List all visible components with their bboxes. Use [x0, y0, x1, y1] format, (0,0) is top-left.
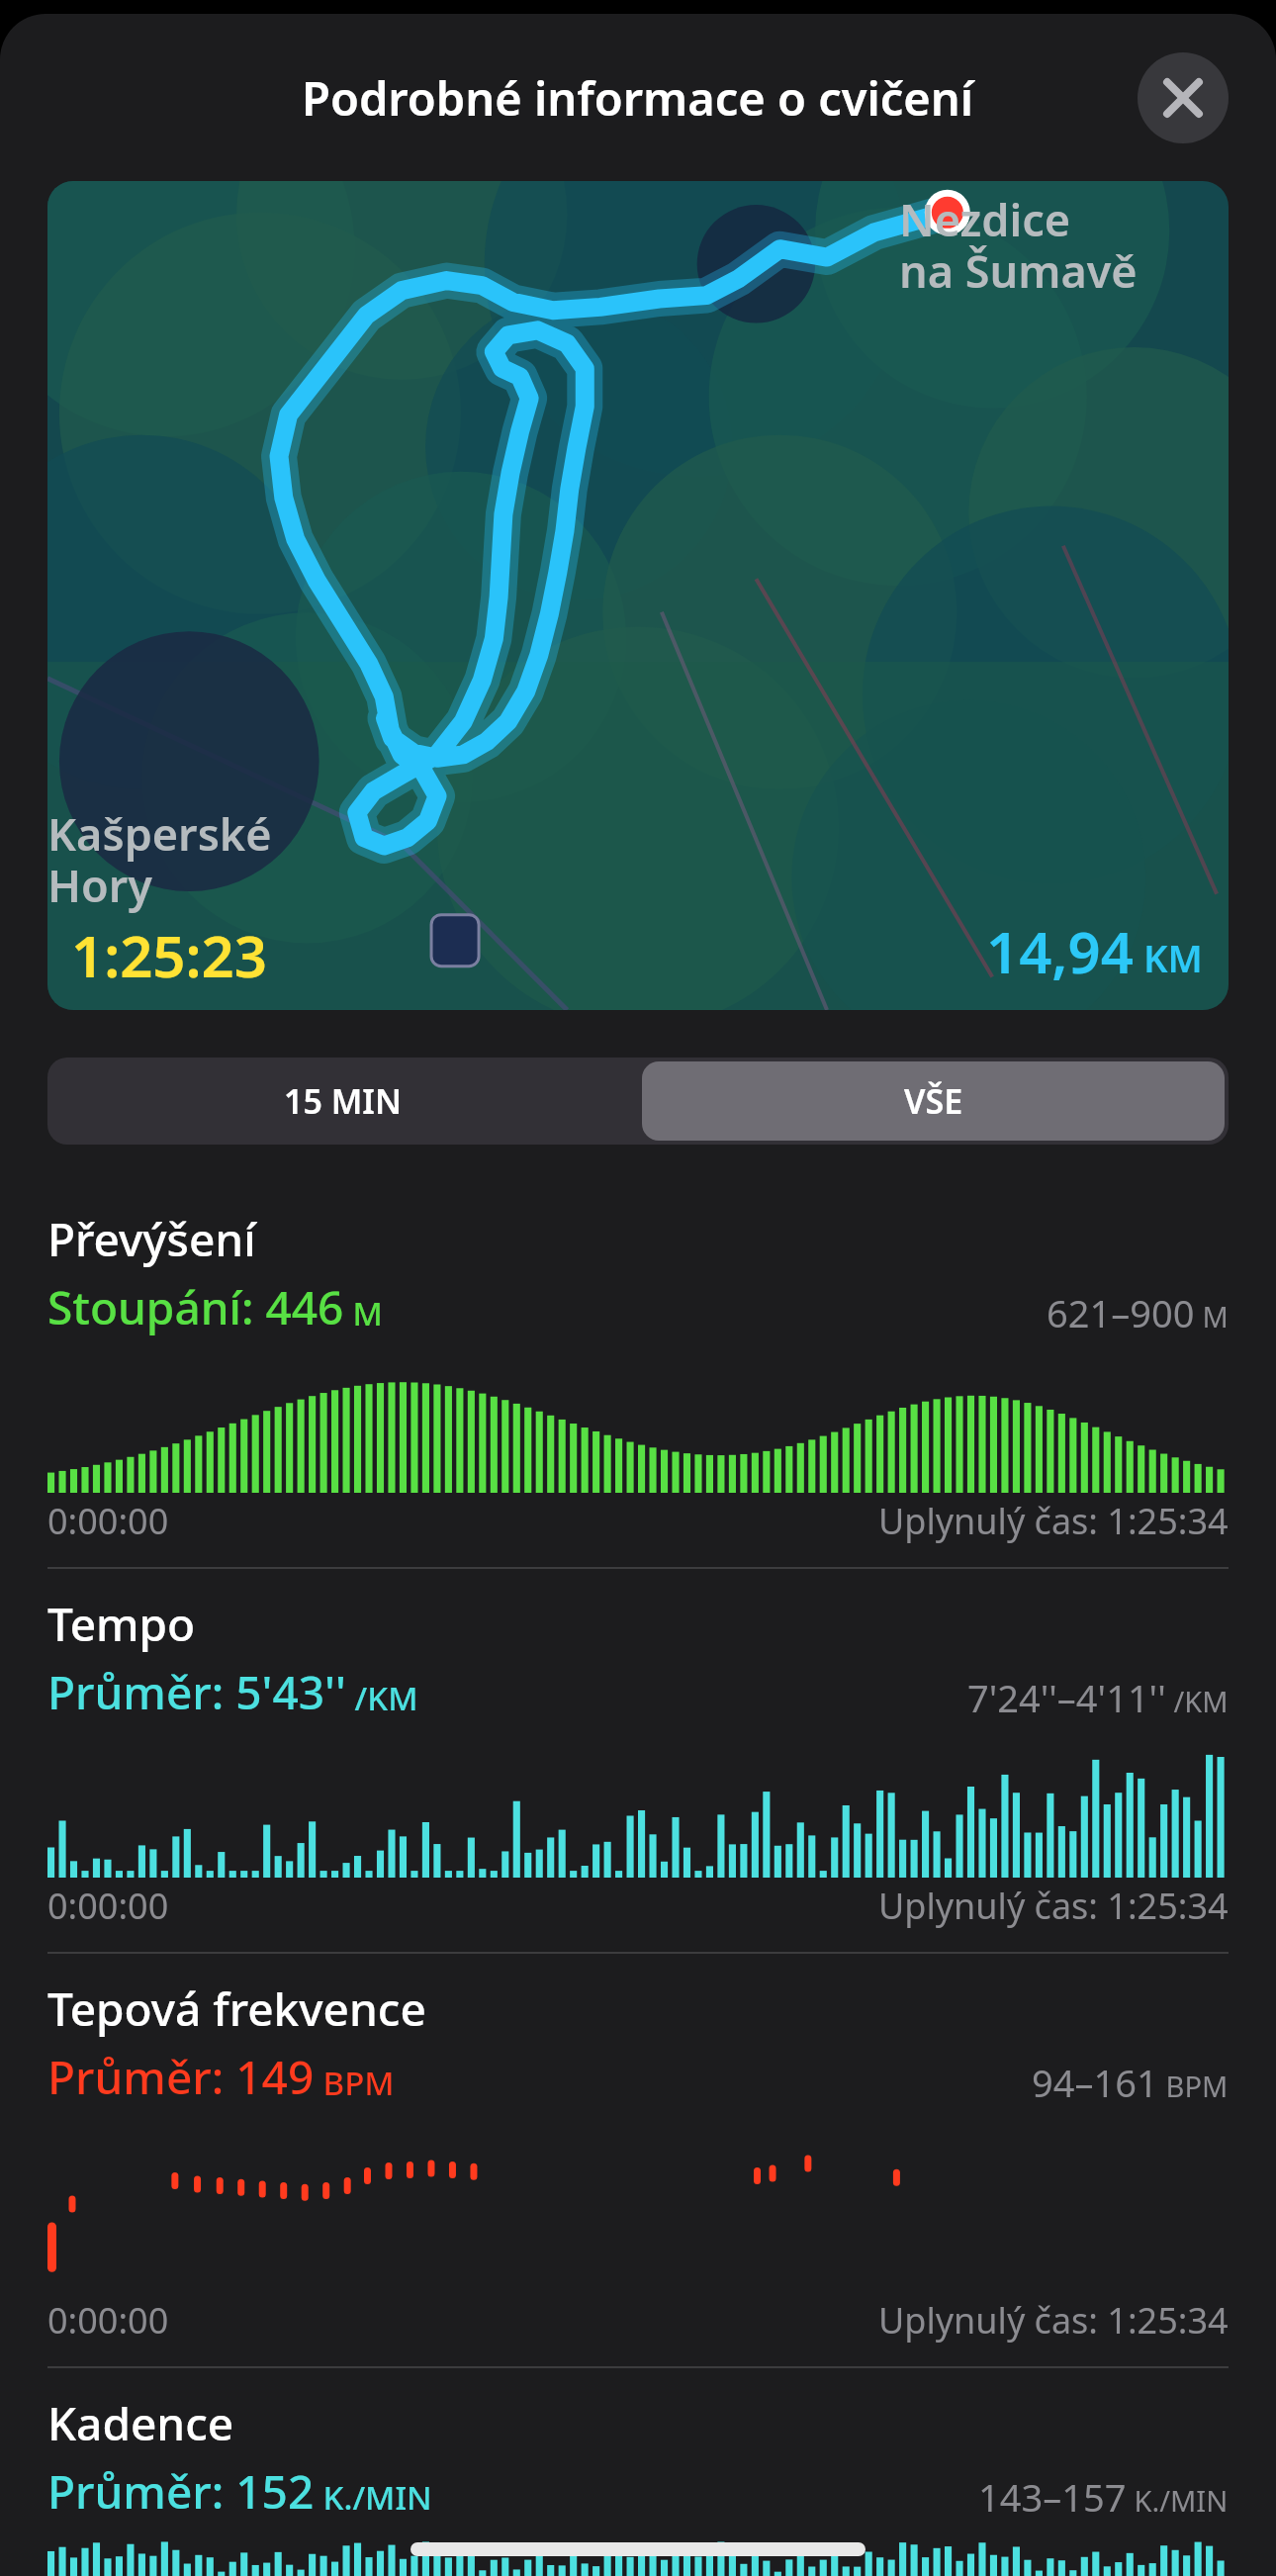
staticText: M: [344, 1291, 383, 1335]
staticText: 7'24''–4'11'': [967, 1672, 1166, 1723]
staticText: Průměr: 152: [47, 2460, 315, 2523]
staticText: 0:00:00: [47, 1497, 169, 1545]
button[interactable]: VŠE: [642, 1061, 1225, 1141]
staticText: Podrobné informace o cvičení: [302, 66, 974, 130]
staticText: Tempo: [47, 1593, 196, 1655]
staticText: Kadence: [47, 2392, 234, 2454]
staticText: Průměr: 149: [47, 2046, 315, 2108]
staticText: K./MIN: [315, 2475, 432, 2520]
staticText: Tepová frekvence: [47, 1978, 426, 2040]
staticText: Nezdice na Šumavě: [899, 189, 1138, 301]
staticText: 14,94: [986, 912, 1134, 990]
staticText: BPM: [315, 2061, 395, 2105]
staticText: Převýšení: [47, 1208, 256, 1270]
staticText: 621–900: [1047, 1287, 1195, 1338]
staticText: Uplynulý čas: 1:25:34: [878, 1882, 1229, 1930]
staticText: Průměr: 5'43'': [47, 1661, 346, 1723]
staticText: BPM: [1158, 2067, 1229, 2105]
staticText: /KM: [1166, 1682, 1229, 1720]
button[interactable]: Tepová frekvence: [47, 1954, 1229, 2368]
button[interactable]: Kadence: [47, 2368, 1229, 2576]
staticText: 0:00:00: [47, 2296, 169, 2345]
button[interactable]: Tempo: [47, 1569, 1229, 1954]
staticText: Kašperské Hory: [47, 803, 272, 915]
staticText: M: [1195, 1297, 1229, 1335]
staticText: 94–161: [1032, 2057, 1158, 2108]
button[interactable]: Close: [1138, 52, 1229, 143]
button[interactable]: Nezdice na Šumavě: [47, 181, 1229, 1010]
button[interactable]: 15 MIN: [47, 1058, 638, 1145]
staticText: Stoupání: 446: [47, 1276, 344, 1338]
staticText: Uplynulý čas: 1:25:34: [878, 1497, 1229, 1545]
button[interactable]: Převýšení: [47, 1184, 1229, 1569]
staticText: Uplynulý čas: 1:25:34: [878, 2296, 1229, 2345]
staticText: VŠE: [904, 1078, 963, 1124]
staticText: KM: [1143, 932, 1203, 983]
staticText: 143–157: [978, 2471, 1127, 2523]
staticText: 1:25:23: [71, 916, 267, 994]
staticText: 0:00:00: [47, 1882, 169, 1930]
staticText: 15 MIN: [284, 1078, 402, 1124]
staticText: K./MIN: [1127, 2481, 1229, 2520]
staticText: /KM: [346, 1676, 418, 1720]
